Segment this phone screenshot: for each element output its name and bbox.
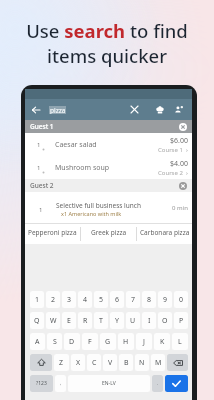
button[interactable]: S <box>47 333 62 350</box>
button[interactable]: D <box>64 333 80 350</box>
button[interactable]: 1 <box>25 133 192 156</box>
staticText: N <box>139 358 145 368</box>
button[interactable]: Z <box>54 354 69 371</box>
staticText: Guest 2 <box>30 181 54 190</box>
staticText: K <box>160 337 165 347</box>
button[interactable]: , <box>55 375 66 392</box>
button[interactable]: Carbonara pizza <box>137 224 192 244</box>
button[interactable]: 3 <box>62 291 76 308</box>
staticText: Greek pizza <box>91 228 127 237</box>
staticText: 7 <box>131 295 136 305</box>
staticText: 0 min <box>172 204 188 212</box>
button[interactable]: P <box>174 312 188 329</box>
staticText: 1 <box>35 295 40 305</box>
button[interactable]: I <box>142 312 156 329</box>
staticText: Course 1 › <box>158 146 188 154</box>
button[interactable]: O <box>158 312 172 329</box>
button[interactable]: Remove Guest 2 <box>179 182 187 190</box>
staticText: $4.00 <box>170 159 188 169</box>
button[interactable]: 1 <box>30 291 44 308</box>
button[interactable]: R <box>78 312 92 329</box>
button[interactable]: 9 <box>158 291 172 308</box>
staticText: Selective full business lunch <box>56 201 141 210</box>
button[interactable]: Guest 1 <box>25 120 192 133</box>
button[interactable]: B <box>119 354 133 371</box>
staticText: , <box>60 380 62 387</box>
button[interactable]: Back <box>25 99 47 120</box>
staticText: O <box>162 316 168 326</box>
button[interactable]: J <box>136 333 152 350</box>
staticText: L <box>178 337 182 347</box>
button[interactable]: H <box>118 333 134 350</box>
staticText: G <box>105 337 111 347</box>
staticText: $6.00 <box>170 136 188 146</box>
staticText: I <box>148 316 151 326</box>
button[interactable]: U <box>126 312 140 329</box>
button[interactable]: E <box>62 312 76 329</box>
button[interactable]: G <box>100 333 116 350</box>
button[interactable]: pizza <box>49 106 66 114</box>
staticText: Guest 1 <box>30 122 54 131</box>
staticText: 8 <box>147 295 152 305</box>
button[interactable]: C <box>87 354 101 371</box>
staticText: J <box>143 337 145 347</box>
button[interactable]: 4 <box>78 291 92 308</box>
staticText: 9 <box>163 295 168 305</box>
button[interactable]: 0 <box>174 291 188 308</box>
staticText: pizza <box>50 106 66 114</box>
button[interactable]: Remove Guest 1 <box>179 123 187 131</box>
staticText: x1 Americano with milk <box>61 210 122 217</box>
button[interactable]: 1 <box>25 156 192 179</box>
button[interactable]: Greek pizza <box>81 224 136 244</box>
button[interactable]: K <box>154 333 170 350</box>
button[interactable]: L <box>172 333 188 350</box>
button[interactable]: 1 <box>25 192 192 219</box>
staticText: . <box>157 380 159 387</box>
button[interactable]: A <box>30 333 45 350</box>
staticText: R <box>83 316 88 326</box>
button[interactable]: Pepperoni pizza <box>25 224 80 244</box>
staticText: D <box>69 337 75 347</box>
button[interactable]: M <box>151 354 165 371</box>
button[interactable]: 8 <box>142 291 156 308</box>
staticText: Carbonara pizza <box>140 228 190 237</box>
staticText: C <box>92 358 97 368</box>
staticText: Caesar salad <box>55 140 97 150</box>
staticText: P <box>179 316 184 326</box>
staticText: U <box>130 316 136 326</box>
button[interactable] <box>167 354 188 371</box>
staticText: F <box>88 337 92 347</box>
button[interactable]: Courses <box>151 99 169 120</box>
button[interactable]: 6 <box>110 291 124 308</box>
button[interactable]: N <box>135 354 149 371</box>
staticText: X <box>76 358 81 368</box>
staticText: S <box>53 337 57 347</box>
button[interactable] <box>165 375 188 392</box>
button[interactable] <box>30 354 52 371</box>
button[interactable]: T <box>94 312 108 329</box>
staticText: Y <box>115 316 119 326</box>
staticText: 1 <box>37 141 55 149</box>
button[interactable]: V <box>103 354 117 371</box>
button[interactable]: 5 <box>94 291 108 308</box>
button[interactable]: EN-LV <box>68 375 150 392</box>
staticText: ?123 <box>36 380 47 387</box>
staticText: Z <box>59 358 64 368</box>
button[interactable]: W <box>46 312 60 329</box>
staticText: Pepperoni pizza <box>28 228 77 237</box>
button[interactable]: F <box>82 333 98 350</box>
button[interactable]: X <box>71 354 85 371</box>
staticText: V <box>108 358 113 368</box>
button[interactable]: Add guest <box>169 99 187 120</box>
staticText: M <box>155 358 162 368</box>
staticText: A <box>35 337 40 347</box>
button[interactable]: 2 <box>46 291 60 308</box>
button[interactable]: . <box>152 375 163 392</box>
button[interactable]: Clear search <box>125 99 143 120</box>
staticText: Mushroom soup <box>55 163 110 173</box>
button[interactable]: Y <box>110 312 124 329</box>
button[interactable]: Q <box>30 312 44 329</box>
button[interactable]: 7 <box>126 291 140 308</box>
button[interactable]: ?123 <box>30 375 53 392</box>
button[interactable]: Guest 2 <box>25 179 192 192</box>
